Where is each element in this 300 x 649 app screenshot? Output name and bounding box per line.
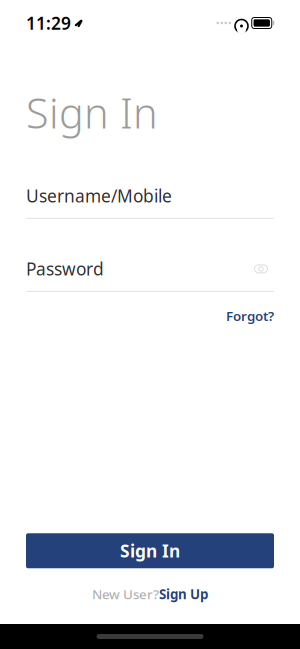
staticText: Password bbox=[26, 257, 104, 280]
staticText: Forgot? bbox=[226, 307, 274, 325]
staticText: Sign In bbox=[120, 539, 180, 562]
staticText: 11:29 bbox=[26, 11, 71, 34]
button[interactable]: Sign In bbox=[26, 533, 274, 568]
button[interactable]: Forgot? bbox=[226, 303, 274, 329]
staticText: Username/Mobile bbox=[26, 184, 172, 207]
staticText: Sign In bbox=[26, 85, 158, 140]
staticText: New User? bbox=[92, 585, 159, 603]
button[interactable]: Show password bbox=[248, 259, 274, 279]
staticText: Sign Up bbox=[159, 585, 208, 603]
button[interactable]: New User? bbox=[92, 578, 208, 610]
